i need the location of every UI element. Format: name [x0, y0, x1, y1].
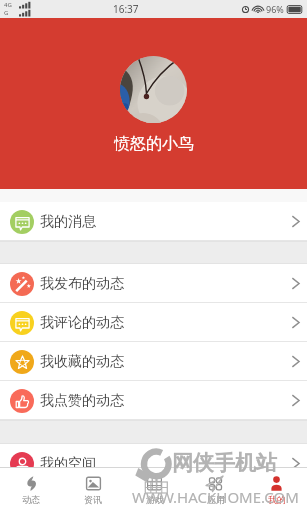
button[interactable]: 游戏: [124, 468, 185, 512]
button[interactable]: 我评论的动态: [0, 303, 307, 342]
staticText: G: [4, 9, 9, 17]
staticText: 我的消息: [40, 213, 96, 231]
staticText: 我点赞的动态: [40, 392, 124, 410]
staticText: 愤怒的小鸟: [114, 134, 194, 154]
staticText: 我的空间: [40, 455, 96, 473]
staticText: 我评论的动态: [40, 314, 124, 332]
button[interactable]: 我收藏的动态: [0, 342, 307, 381]
staticText: 资讯: [84, 494, 102, 505]
staticText: 动态: [22, 494, 40, 505]
button[interactable]: 动态: [0, 468, 62, 512]
button[interactable]: 我点赞的动态: [0, 381, 307, 420]
staticText: 16:37: [113, 2, 139, 16]
button[interactable]: 我的空间: [0, 444, 307, 483]
staticText: WWW.HACKHOME.COM: [132, 487, 299, 507]
button[interactable]: 我发布的动态: [0, 264, 307, 303]
button[interactable]: 我的消息: [0, 202, 307, 241]
button[interactable]: 资讯: [62, 468, 124, 512]
staticText: 96%: [266, 3, 284, 15]
staticText: 我收藏的动态: [40, 353, 124, 371]
staticText: 网侠手机站: [172, 450, 277, 476]
staticText: 游戏: [146, 494, 164, 505]
button[interactable]: 我的: [246, 468, 307, 512]
staticText: 我发布的动态: [40, 275, 124, 293]
button[interactable]: Profile avatar: [120, 56, 187, 123]
button[interactable]: 应用: [185, 468, 246, 512]
staticText: 我的: [268, 494, 286, 505]
staticText: 4G: [4, 1, 12, 9]
staticText: 应用: [207, 494, 225, 505]
